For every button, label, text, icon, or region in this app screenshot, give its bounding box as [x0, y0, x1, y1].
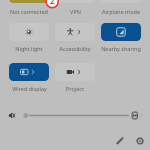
button[interactable]: Accessibility	[55, 23, 95, 41]
staticText: Accessibility	[59, 45, 91, 52]
button[interactable]: Internet - Not connected	[9, 0, 49, 3]
button[interactable]: Settings	[132, 133, 148, 149]
staticText: Night light	[15, 45, 43, 52]
staticText: VPN	[70, 8, 81, 15]
button[interactable]: Wired display	[9, 63, 49, 81]
staticText: Wired display	[12, 85, 47, 92]
staticText: Airplane mode	[102, 8, 140, 15]
button[interactable]: VPN	[55, 0, 95, 3]
button[interactable]: Edit	[112, 133, 128, 149]
button[interactable]: Nearby sharing	[101, 23, 141, 41]
staticText: Nearby sharing	[101, 45, 141, 52]
button[interactable]: Night light	[9, 23, 49, 41]
staticText: Not connected	[10, 8, 48, 15]
staticText: 2	[50, 0, 55, 7]
staticText: Project	[66, 85, 84, 92]
button[interactable]: Project	[55, 63, 95, 81]
button[interactable]: Brightness	[0, 106, 150, 125]
